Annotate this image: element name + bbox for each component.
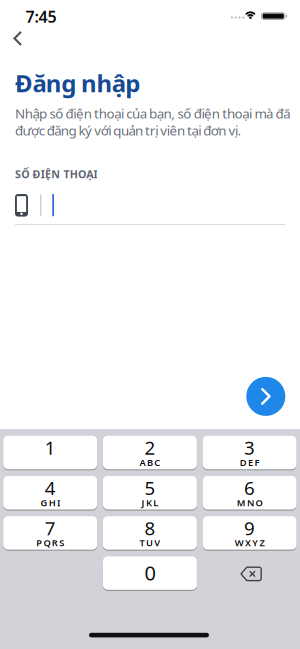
staticText: MNO bbox=[237, 496, 262, 509]
button[interactable]: 6 bbox=[203, 476, 297, 509]
staticText: WXYZ bbox=[235, 537, 265, 549]
staticText: được đăng ký với quản trị viên tại đơn v… bbox=[15, 121, 241, 139]
staticText: TUV bbox=[140, 537, 160, 549]
staticText: Nhập số điện thoại của bạn, số điện thoạ… bbox=[15, 104, 290, 122]
button[interactable]: 1 bbox=[3, 436, 97, 469]
staticText: SỐ ĐIỆN THOẠI bbox=[15, 167, 97, 181]
staticText: 4 bbox=[45, 475, 56, 500]
button[interactable]: Back bbox=[0, 16, 40, 60]
staticText: JKL bbox=[142, 496, 158, 509]
staticText: GHI bbox=[40, 496, 60, 509]
button[interactable]: Next bbox=[246, 377, 285, 416]
staticText: 9 bbox=[244, 516, 255, 540]
staticText: ABC bbox=[140, 456, 160, 469]
staticText: 6 bbox=[244, 475, 255, 500]
staticText: 1 bbox=[45, 435, 56, 460]
button[interactable]: 7 bbox=[3, 516, 97, 550]
button[interactable]: 8 bbox=[103, 516, 197, 550]
button[interactable]: 4 bbox=[3, 476, 97, 509]
button[interactable]: 0 bbox=[103, 556, 197, 590]
staticText: 2 bbox=[144, 435, 155, 460]
staticText: 5 bbox=[144, 475, 155, 500]
staticText: 7:45 bbox=[25, 6, 56, 27]
staticText: 0 bbox=[144, 559, 155, 586]
button[interactable]: 9 bbox=[203, 516, 297, 550]
button[interactable]: 5 bbox=[103, 476, 197, 509]
staticText: PQRS bbox=[36, 537, 64, 549]
button[interactable]: 2 bbox=[103, 436, 197, 469]
staticText: 8 bbox=[144, 516, 155, 540]
button[interactable]: 3 bbox=[203, 436, 297, 469]
staticText: Đăng nhập bbox=[15, 67, 140, 99]
button[interactable]: Delete bbox=[203, 556, 297, 590]
staticText: DEF bbox=[240, 456, 259, 469]
staticText: 7 bbox=[45, 516, 56, 540]
staticText: 3 bbox=[244, 435, 255, 460]
